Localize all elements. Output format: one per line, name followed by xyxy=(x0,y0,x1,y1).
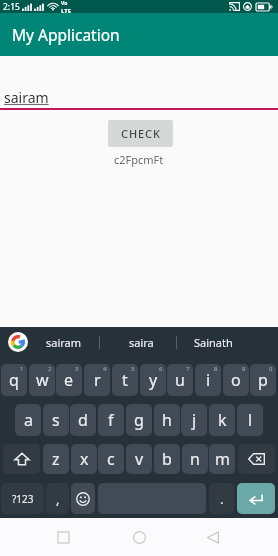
button[interactable]: q xyxy=(1,364,27,396)
staticText: sairam xyxy=(4,88,49,107)
button[interactable]: j xyxy=(181,404,207,436)
button[interactable]: y xyxy=(140,364,166,396)
staticText: ?123 xyxy=(12,492,34,506)
staticText: m xyxy=(215,448,230,470)
button[interactable]: Shift xyxy=(3,444,40,474)
button[interactable]: x xyxy=(71,444,97,474)
button[interactable]: v xyxy=(126,444,152,474)
staticText: 8 xyxy=(214,365,218,373)
staticText: x xyxy=(80,448,89,470)
button[interactable]: w xyxy=(29,364,55,396)
staticText: CHECK xyxy=(121,126,161,141)
staticText: u xyxy=(175,369,185,391)
staticText: n xyxy=(190,448,200,470)
button[interactable]: s xyxy=(43,404,69,436)
staticText: h xyxy=(162,409,172,431)
staticText: e xyxy=(64,369,74,391)
staticText: i xyxy=(206,369,211,391)
button[interactable]: r xyxy=(84,364,110,396)
staticText: 2:15 xyxy=(3,1,20,13)
button[interactable]: b xyxy=(154,444,180,474)
staticText: p xyxy=(258,369,268,391)
button[interactable]: ?123 xyxy=(1,483,44,514)
staticText: 6 xyxy=(159,365,163,373)
staticText: y xyxy=(149,369,158,391)
staticText: My Application xyxy=(12,24,120,45)
button[interactable]: f xyxy=(98,404,124,436)
staticText: 9 xyxy=(242,365,246,373)
staticText: Vo xyxy=(61,0,68,7)
staticText: sairam xyxy=(46,335,82,350)
staticText: . xyxy=(220,490,224,508)
staticText: saira xyxy=(129,335,154,350)
button[interactable]: o xyxy=(223,364,249,396)
staticText: q xyxy=(9,369,19,391)
staticText: LTE xyxy=(61,7,72,13)
staticText: w xyxy=(36,369,49,391)
staticText: c xyxy=(107,448,115,470)
button[interactable]: a xyxy=(15,404,41,436)
staticText: t xyxy=(122,369,128,391)
button[interactable]: n xyxy=(182,444,208,474)
button[interactable]: Recent apps xyxy=(43,518,83,556)
staticText: b xyxy=(162,448,172,470)
staticText: Sainath xyxy=(194,335,233,350)
button[interactable]: Emoji xyxy=(71,483,95,514)
staticText: l xyxy=(248,409,253,431)
button[interactable]: CHECK xyxy=(108,120,173,147)
staticText: d xyxy=(78,409,88,431)
staticText: 1 xyxy=(20,365,24,373)
staticText: 4 xyxy=(103,365,107,373)
button[interactable]: z xyxy=(43,444,69,474)
button[interactable]: sairam xyxy=(26,327,102,358)
staticText: j xyxy=(192,409,197,431)
button[interactable]: Enter xyxy=(237,483,275,514)
button[interactable]: saira xyxy=(103,327,179,358)
button[interactable]: Back xyxy=(193,518,233,556)
staticText: f xyxy=(108,409,114,431)
staticText: r xyxy=(94,369,101,391)
staticText: s xyxy=(52,409,60,431)
button[interactable]: u xyxy=(167,364,193,396)
staticText: z xyxy=(52,448,60,470)
staticText: o xyxy=(231,369,241,391)
button[interactable]: e xyxy=(56,364,82,396)
button[interactable]: . xyxy=(209,483,234,514)
button[interactable]: g xyxy=(126,404,152,436)
staticText: 0 xyxy=(269,365,273,373)
staticText: c2FpcmFt xyxy=(114,152,164,167)
staticText: , xyxy=(56,490,60,508)
button[interactable]: , xyxy=(46,483,69,514)
staticText: 5 xyxy=(131,365,135,373)
button[interactable]: t xyxy=(112,364,138,396)
staticText: g xyxy=(134,409,144,431)
staticText: k xyxy=(218,409,227,431)
button[interactable]: Backspace xyxy=(238,444,275,474)
button[interactable]: Home xyxy=(119,518,159,556)
staticText: v xyxy=(135,448,144,470)
button[interactable]: m xyxy=(209,444,235,474)
button[interactable]: k xyxy=(209,404,235,436)
button[interactable]: Sainath xyxy=(175,327,251,358)
staticText: 2 xyxy=(48,365,52,373)
staticText: 7 xyxy=(186,365,190,373)
button[interactable]: d xyxy=(70,404,96,436)
button[interactable]: c xyxy=(98,444,124,474)
button[interactable]: p xyxy=(250,364,276,396)
staticText: a xyxy=(24,409,33,431)
staticText: 3 xyxy=(75,365,79,373)
button[interactable]: i xyxy=(195,364,221,396)
button[interactable]: h xyxy=(154,404,180,436)
button[interactable]: l xyxy=(237,404,263,436)
